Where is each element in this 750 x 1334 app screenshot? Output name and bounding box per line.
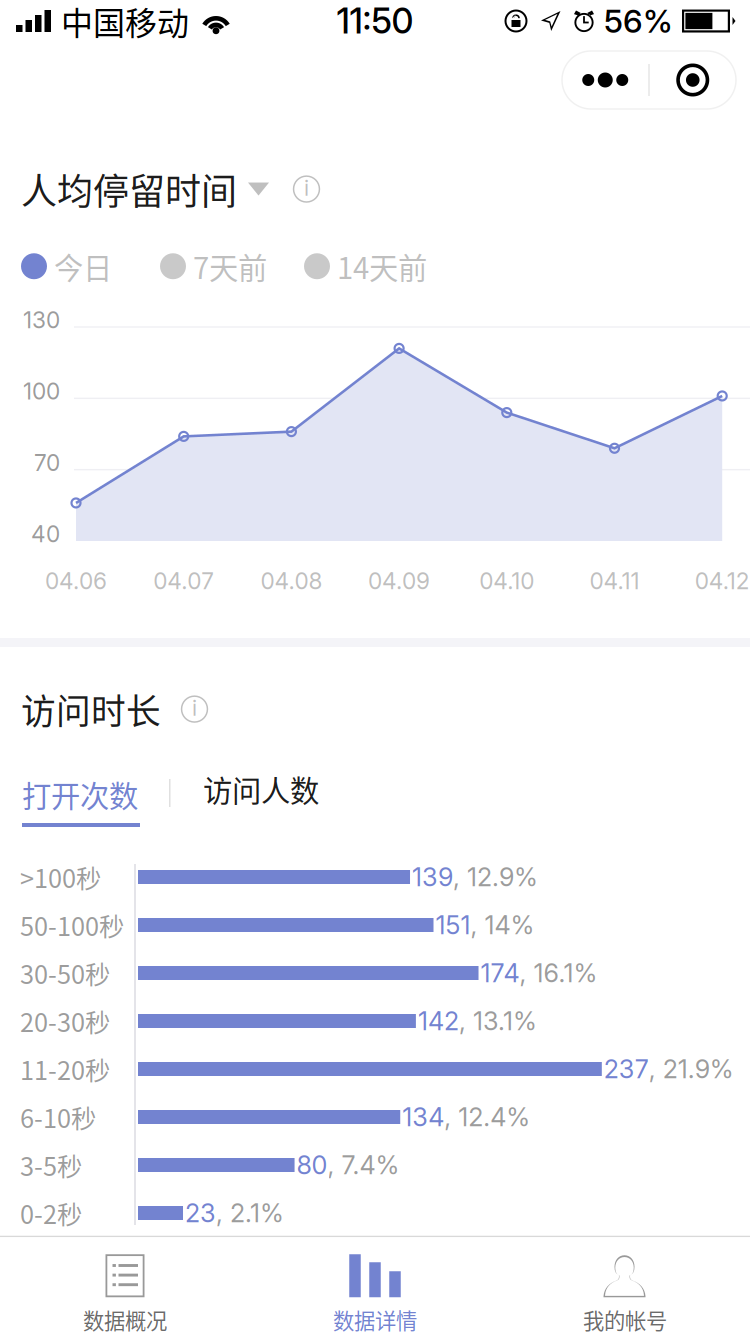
- staticText: 7天前: [193, 245, 267, 287]
- staticText: 人均停留时间: [21, 163, 237, 215]
- staticText: 访问时长: [21, 684, 161, 734]
- staticText: 我的帐号: [583, 1304, 667, 1334]
- staticText: 14天前: [337, 245, 427, 287]
- staticText: 中国移动: [61, 0, 189, 44]
- staticText: , 12.9%: [453, 862, 538, 892]
- staticText: 04.06: [45, 567, 107, 595]
- staticText: 151: [435, 910, 470, 940]
- staticText: 20-30秒: [20, 1003, 110, 1039]
- staticText: >100秒: [20, 859, 101, 895]
- staticText: i: [192, 695, 197, 721]
- staticText: 今日: [54, 245, 112, 287]
- staticText: 访问人数: [203, 768, 319, 810]
- staticText: 70: [34, 449, 60, 476]
- staticText: 50-100秒: [20, 907, 124, 943]
- staticText: 11:50: [336, 0, 413, 42]
- staticText: , 7.4%: [328, 1150, 400, 1180]
- button[interactable]: 打开次数: [22, 773, 140, 827]
- staticText: 100: [23, 378, 60, 405]
- staticText: 6-10秒: [20, 1099, 96, 1135]
- staticText: 80: [297, 1150, 328, 1180]
- staticText: 30-50秒: [20, 955, 110, 991]
- staticText: 56%: [604, 2, 673, 40]
- staticText: 142: [418, 1006, 459, 1036]
- staticText: , 2.1%: [216, 1198, 284, 1228]
- button[interactable]: More options: [562, 51, 648, 109]
- staticText: 04.08: [260, 567, 322, 595]
- staticText: , 14%: [470, 910, 534, 940]
- staticText: 0-2秒: [20, 1195, 82, 1231]
- button[interactable]: 我的帐号: [500, 1237, 750, 1334]
- staticText: , 16.1%: [519, 958, 597, 988]
- staticText: 数据概况: [83, 1304, 167, 1334]
- staticText: 174: [480, 958, 519, 988]
- button[interactable]: Close mini program: [650, 51, 736, 109]
- staticText: , 21.9%: [649, 1054, 734, 1084]
- staticText: 23: [185, 1198, 216, 1228]
- staticText: 04.07: [153, 567, 214, 595]
- button[interactable]: 数据详情: [250, 1237, 500, 1334]
- staticText: 40: [31, 520, 60, 548]
- staticText: 11-20秒: [20, 1051, 110, 1087]
- staticText: , 13.1%: [459, 1006, 537, 1036]
- staticText: 237: [604, 1054, 649, 1084]
- button[interactable]: 访问人数: [22, 773, 140, 805]
- staticText: , 12.4%: [444, 1102, 530, 1132]
- staticText: 139: [412, 862, 453, 892]
- button[interactable]: 数据概况: [0, 1237, 250, 1334]
- staticText: 04.10: [479, 567, 534, 595]
- staticText: 3-5秒: [20, 1147, 82, 1183]
- staticText: 04.09: [368, 567, 430, 595]
- staticText: 04.11: [589, 567, 639, 595]
- staticText: i: [304, 175, 309, 201]
- staticText: 04.12: [695, 567, 750, 595]
- staticText: 打开次数: [22, 773, 138, 815]
- staticText: 数据详情: [333, 1304, 417, 1334]
- staticText: 134: [402, 1102, 444, 1132]
- staticText: 130: [23, 306, 60, 334]
